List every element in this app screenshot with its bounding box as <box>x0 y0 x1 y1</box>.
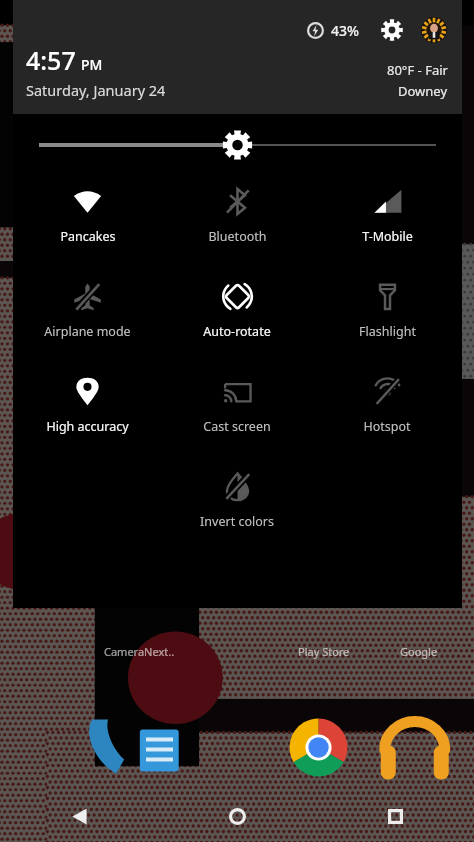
button[interactable]: Invert colors <box>162 461 312 536</box>
staticText: Downey <box>398 82 448 100</box>
staticText: Auto-rotate <box>203 323 271 340</box>
staticText: High accuracy <box>46 418 129 435</box>
button[interactable]: Home <box>158 790 316 842</box>
button[interactable]: Cast screen <box>162 366 312 441</box>
staticText: Hotspot <box>363 418 411 435</box>
button[interactable]: Settings <box>378 16 406 44</box>
button[interactable]: 80°F - Fair <box>387 61 448 100</box>
button[interactable]: Pancakes <box>13 176 162 251</box>
staticText: Google <box>400 644 438 659</box>
staticText: CameraNext.. <box>104 644 175 659</box>
staticText: 80°F - Fair <box>387 61 448 79</box>
button[interactable]: Hotspot <box>312 366 462 441</box>
staticText: Invert colors <box>200 513 274 530</box>
button[interactable]: Recents <box>316 790 474 842</box>
staticText: Cast screen <box>203 418 271 435</box>
staticText: 4:57 <box>26 43 76 77</box>
staticText: Saturday, January 24 <box>26 80 166 100</box>
button[interactable]: Flashlight <box>312 271 462 346</box>
staticText: Flashlight <box>359 323 416 340</box>
staticText: Airplane mode <box>44 323 131 340</box>
button[interactable]: T-Mobile <box>312 176 462 251</box>
staticText: Play Store <box>298 644 350 659</box>
button[interactable]: Brightness <box>13 114 462 176</box>
button[interactable]: Airplane mode <box>13 271 162 346</box>
staticText: Pancakes <box>60 228 116 245</box>
staticText: T-Mobile <box>362 228 413 245</box>
staticText: 43% <box>331 21 359 40</box>
button[interactable]: High accuracy <box>13 366 162 441</box>
button[interactable]: Back <box>0 790 158 842</box>
button[interactable]: Bluetooth <box>162 176 312 251</box>
button[interactable]: Auto-rotate <box>162 271 312 346</box>
button[interactable]: User profile <box>420 16 448 44</box>
staticText: PM <box>81 55 103 74</box>
staticText: Bluetooth <box>208 228 267 245</box>
